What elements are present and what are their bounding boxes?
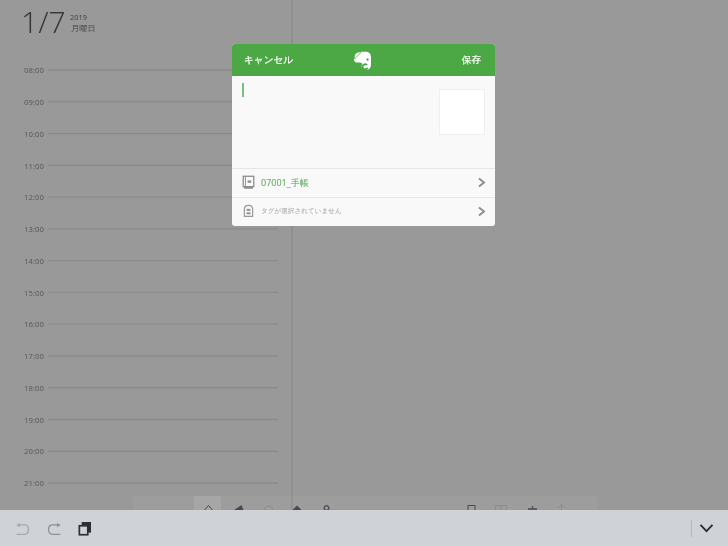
staticText: 18:00 bbox=[24, 383, 44, 394]
staticText: 21:00 bbox=[24, 478, 44, 489]
button[interactable]: 07001_手帳 bbox=[232, 169, 495, 197]
staticText: 1/7 bbox=[21, 1, 66, 42]
button[interactable]: 保存 bbox=[452, 44, 495, 76]
staticText: キャンセル bbox=[244, 54, 294, 66]
button[interactable]: Dismiss bbox=[0, 0, 728, 546]
staticText: 10:00 bbox=[24, 129, 44, 140]
staticText: 12:00 bbox=[24, 192, 44, 203]
staticText: 月曜日 bbox=[71, 23, 96, 33]
staticText: 07001_手帳 bbox=[261, 176, 309, 188]
staticText: 08:00 bbox=[24, 65, 44, 76]
button[interactable]: キャンセル bbox=[232, 44, 304, 76]
staticText: 14:00 bbox=[24, 256, 44, 267]
button[interactable]: Undo bbox=[7, 513, 38, 544]
staticText: 13:00 bbox=[24, 224, 44, 235]
staticText: 20:00 bbox=[24, 446, 44, 457]
staticText: 16:00 bbox=[24, 319, 44, 330]
staticText: タグが選択されていません bbox=[261, 207, 342, 215]
button[interactable]: Redo bbox=[38, 513, 69, 544]
button[interactable]: タグが選択されていません bbox=[232, 198, 495, 226]
staticText: 保存 bbox=[462, 54, 482, 66]
button[interactable]: Copy bbox=[69, 513, 100, 544]
staticText: 19:00 bbox=[24, 415, 44, 426]
staticText: 2019 bbox=[70, 12, 87, 22]
staticText: 15:00 bbox=[24, 288, 44, 299]
staticText: 09:00 bbox=[24, 97, 44, 108]
staticText: 11:00 bbox=[24, 161, 44, 172]
staticText: 17:00 bbox=[24, 351, 44, 362]
button[interactable]: Collapse bbox=[692, 510, 721, 546]
